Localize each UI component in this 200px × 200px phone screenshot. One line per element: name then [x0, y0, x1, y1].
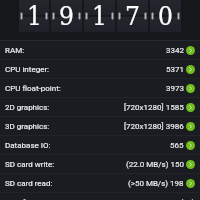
- staticText: 1: [92, 1, 107, 31]
- button[interactable]: Database IO:: [0, 136, 200, 154]
- staticText: [720x1280] 3986: [124, 122, 184, 131]
- staticText: 1: [27, 1, 42, 31]
- staticText: SD card write:: [5, 160, 55, 169]
- staticText: RAM:: [5, 46, 25, 55]
- button[interactable]: CPU integer:: [0, 60, 200, 78]
- staticText: [720x1280] 1585: [124, 103, 184, 112]
- staticText: 565: [170, 141, 184, 150]
- staticText: 0: [158, 1, 173, 31]
- staticText: 3973: [166, 84, 184, 93]
- staticText: Database IO:: [5, 141, 51, 150]
- staticText: CPU integer:: [5, 65, 50, 74]
- button[interactable]: RAM:: [0, 41, 200, 59]
- staticText: 3D graphics:: [5, 122, 50, 131]
- staticText: 7: [125, 1, 140, 31]
- staticText: 2D graphics:: [5, 103, 50, 112]
- staticText: 3342: [166, 46, 184, 55]
- staticText: (>50 MB/s) 198: [128, 179, 184, 188]
- staticText: CPU float-point:: [5, 84, 61, 93]
- button[interactable]: 3D graphics:: [0, 117, 200, 135]
- staticText: CPU frequency:: [5, 198, 60, 200]
- button[interactable]: SD card read:: [0, 174, 200, 192]
- button[interactable]: CPU frequency:: [0, 193, 200, 200]
- staticText: 1800 MHz (x4): [142, 198, 195, 200]
- button[interactable]: 2D graphics:: [0, 98, 200, 116]
- staticText: 9: [59, 1, 74, 31]
- button[interactable]: SD card write:: [0, 155, 200, 173]
- staticText: SD card read:: [5, 179, 53, 188]
- button[interactable]: CPU float-point:: [0, 79, 200, 97]
- staticText: (22.0 MB/s) 150: [126, 160, 184, 169]
- staticText: 5371: [166, 65, 184, 74]
